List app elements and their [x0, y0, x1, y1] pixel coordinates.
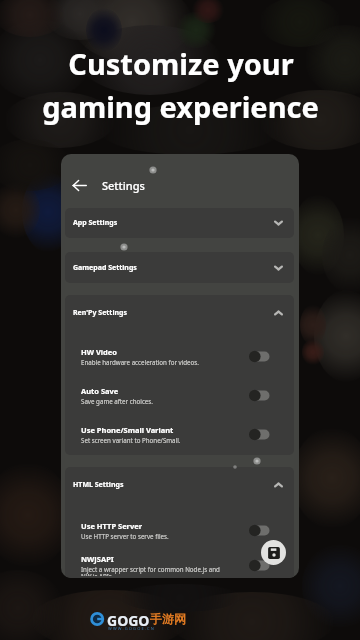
- staticText: Auto Save: [81, 386, 119, 396]
- button[interactable]: App Settings: [65, 208, 294, 238]
- staticText: Enable hardware acceleration for videos.: [81, 358, 199, 366]
- staticText: Save game after choices.: [81, 397, 153, 405]
- button[interactable]: Toggle: [249, 559, 270, 572]
- button[interactable]: HW Video: [65, 345, 294, 367]
- button[interactable]: Use Phone/Small Variant: [65, 423, 294, 445]
- staticText: Settings: [102, 178, 145, 193]
- staticText: 手游网: [150, 611, 186, 626]
- button[interactable]: Auto Save: [65, 384, 294, 406]
- button[interactable]: Toggle: [249, 524, 270, 537]
- staticText: Customize your: [68, 44, 294, 83]
- button[interactable]: Gamepad Settings: [65, 252, 294, 283]
- button[interactable]: Ren'Py Settings: [65, 295, 294, 331]
- staticText: Use Phone/Small Variant: [81, 425, 174, 435]
- staticText: Set screen variant to Phone/Small.: [81, 436, 181, 444]
- staticText: Inject a wrapper script for common Node.…: [81, 565, 220, 576]
- staticText: Ren'Py Settings: [73, 308, 127, 318]
- button[interactable]: Toggle: [249, 389, 270, 402]
- staticText: HW Video: [81, 347, 117, 357]
- staticText: GOGO: [107, 611, 150, 630]
- staticText: WWW.GOGOE.CN: [108, 626, 155, 631]
- button[interactable]: Use HTTP Server: [65, 519, 294, 541]
- button[interactable]: Save: [261, 540, 286, 565]
- staticText: Gamepad Settings: [73, 263, 137, 273]
- staticText: gaming experience: [42, 87, 319, 126]
- staticText: HTML Settings: [73, 480, 124, 490]
- staticText: NWJSAPI: [81, 554, 114, 564]
- staticText: App Settings: [73, 218, 118, 228]
- button[interactable]: Toggle: [249, 428, 270, 441]
- staticText: Use HTTP Server: [81, 521, 143, 531]
- staticText: Use HTTP server to serve files.: [81, 532, 169, 540]
- button[interactable]: NWJSAPI: [65, 554, 294, 576]
- button[interactable]: Back: [65, 171, 93, 199]
- button[interactable]: HTML Settings: [65, 467, 294, 503]
- button[interactable]: Toggle: [249, 350, 270, 363]
